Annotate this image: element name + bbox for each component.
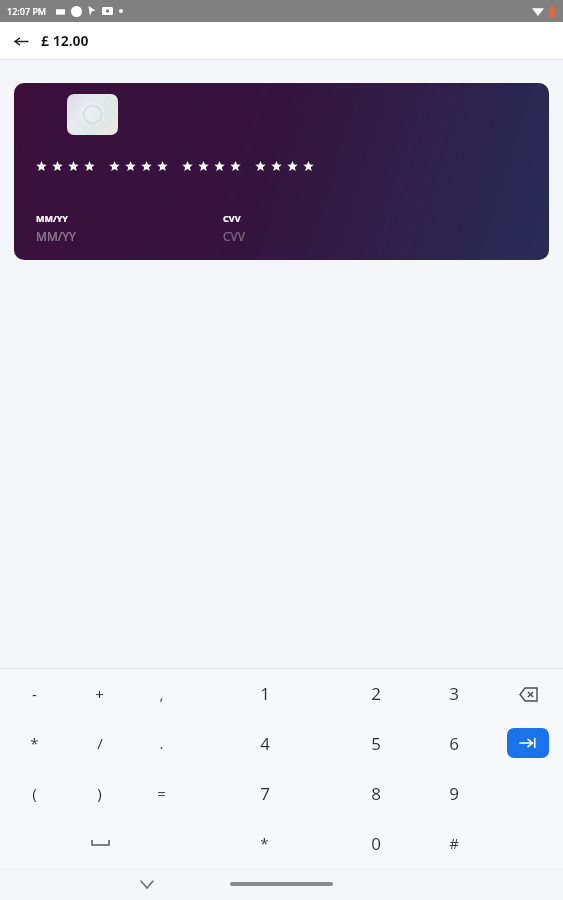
staticText: 4 <box>260 732 270 755</box>
button[interactable]: Space <box>69 818 130 868</box>
button[interactable]: Back <box>8 28 34 54</box>
button[interactable]: 7 <box>192 768 337 818</box>
staticText: 0 <box>371 832 381 855</box>
staticText: . <box>159 733 164 753</box>
button[interactable]: + <box>69 669 130 718</box>
staticText: 12:07 PM <box>7 5 47 17</box>
staticText: * <box>30 733 39 753</box>
button[interactable]: / <box>69 718 130 768</box>
staticText: CVV <box>223 212 241 224</box>
button[interactable]: 2 <box>337 669 415 718</box>
staticText: MM/YY <box>36 228 76 244</box>
staticText: MM/YY <box>36 212 68 224</box>
button[interactable]: 5 <box>337 718 415 768</box>
button[interactable]: # <box>415 818 493 868</box>
staticText: = <box>157 783 166 803</box>
staticText: + <box>95 684 104 704</box>
button[interactable]: . <box>130 718 192 768</box>
staticText: ( <box>32 783 37 803</box>
staticText: 8 <box>371 782 381 805</box>
button[interactable]: 6 <box>415 718 493 768</box>
staticText: , <box>159 684 164 704</box>
other: Enter <box>507 728 549 758</box>
button[interactable]: Backspace <box>493 669 563 718</box>
staticText: 2 <box>371 682 381 705</box>
staticText: - <box>32 684 37 704</box>
staticText: 9 <box>449 782 459 805</box>
button[interactable]: ) <box>69 768 130 818</box>
button[interactable]: Hide keyboard <box>133 870 161 898</box>
button[interactable]: - <box>0 669 69 718</box>
staticText: £ 12.00 <box>41 31 89 50</box>
button[interactable]: 8 <box>337 768 415 818</box>
button[interactable]: 3 <box>415 669 493 718</box>
button[interactable]: 0 <box>337 818 415 868</box>
button[interactable]: 4 <box>192 718 337 768</box>
staticText: 7 <box>260 782 270 805</box>
button[interactable]: ( <box>0 768 69 818</box>
staticText: 6 <box>449 732 459 755</box>
staticText: ) <box>97 783 102 803</box>
staticText: / <box>97 733 103 753</box>
staticText: * <box>260 833 269 853</box>
other: Space <box>85 833 115 853</box>
staticText: 5 <box>371 732 381 755</box>
button[interactable]: 9 <box>415 768 493 818</box>
staticText: # <box>449 833 459 853</box>
staticText: 1 <box>260 682 270 705</box>
button[interactable]: 1 <box>192 669 337 718</box>
button[interactable]: * <box>0 718 69 768</box>
button[interactable]: = <box>130 768 192 818</box>
button[interactable]: * <box>192 818 337 868</box>
button[interactable]: Enter <box>493 718 563 768</box>
staticText: CVV <box>223 228 245 244</box>
other: Backspace <box>516 682 540 706</box>
staticText: 3 <box>449 682 459 705</box>
button[interactable]: MM/YY <box>14 83 549 260</box>
button[interactable]: , <box>130 669 192 718</box>
